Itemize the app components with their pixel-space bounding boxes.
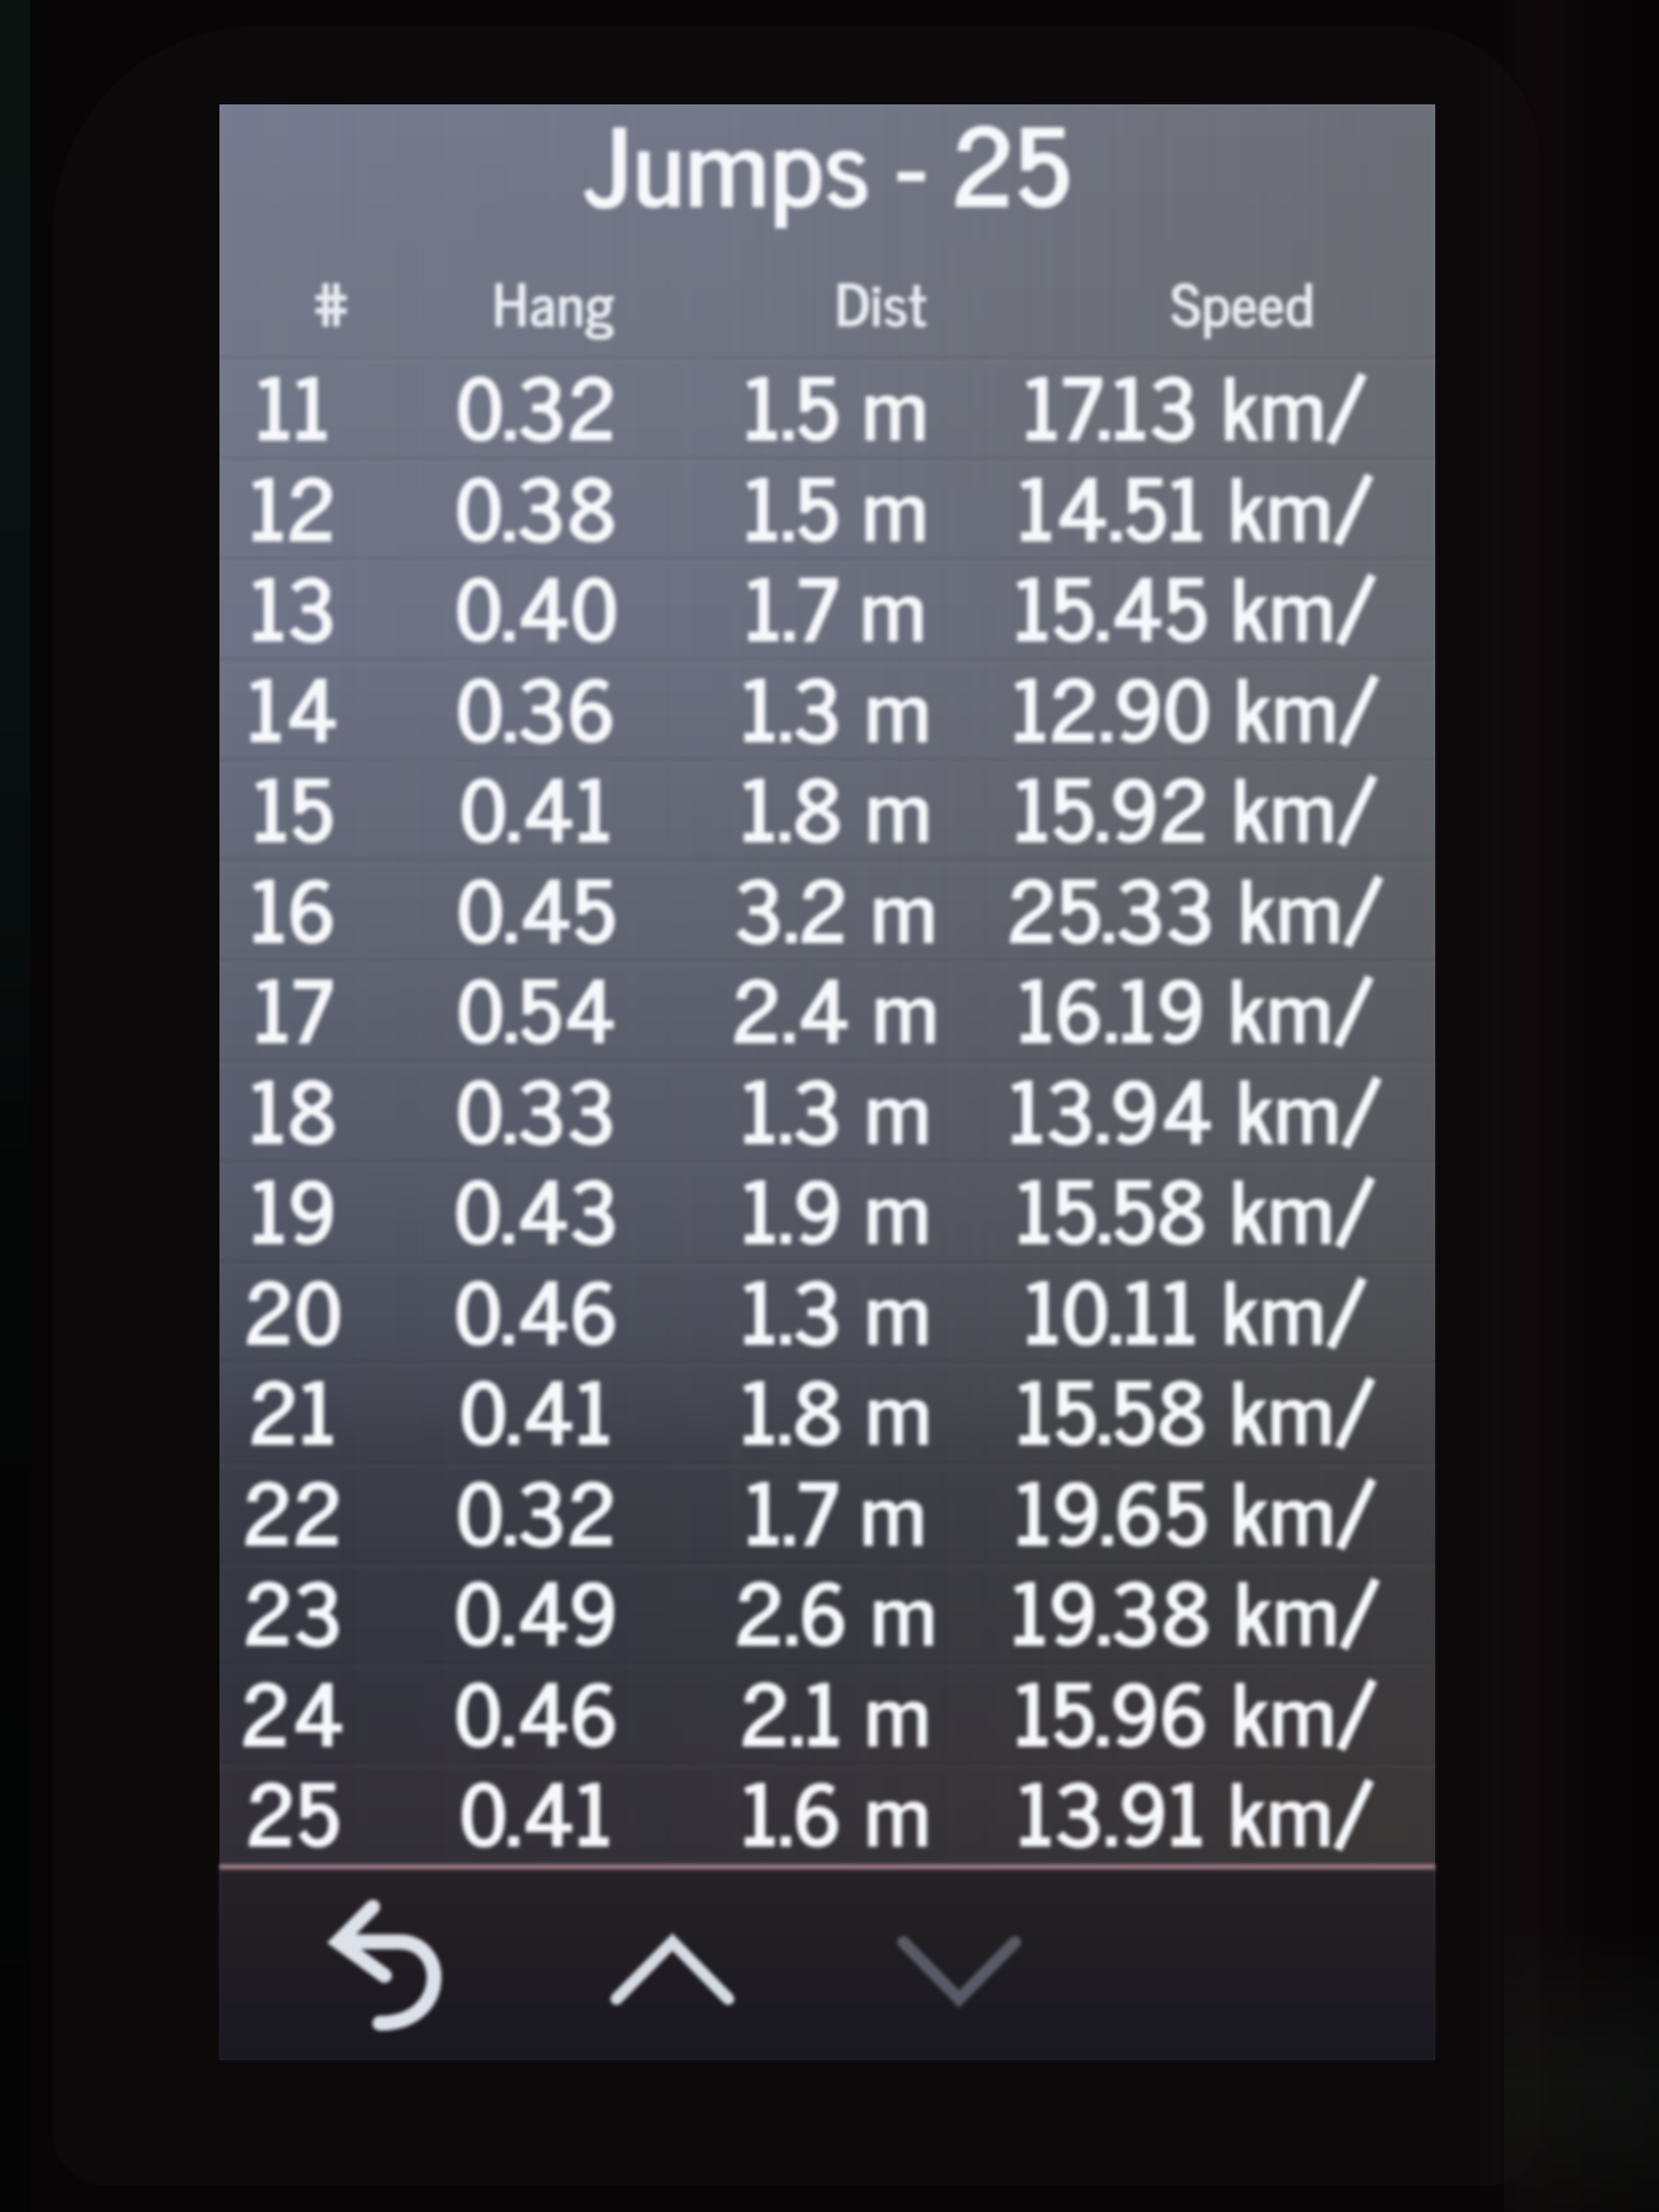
staticText: 12	[249, 434, 337, 575]
staticText: 0.43	[454, 1136, 619, 1278]
staticText: 15.58 km/	[1015, 1337, 1377, 1479]
button[interactable]	[219, 1764, 1435, 1865]
button[interactable]	[219, 861, 1435, 962]
staticText: 3.2 m	[734, 835, 937, 977]
staticText: 21	[249, 1337, 337, 1479]
staticText: 20	[244, 1237, 342, 1379]
staticText: 13.91 km/	[1017, 1739, 1375, 1880]
button[interactable]	[219, 660, 1435, 761]
staticText: 15.58 km/	[1015, 1136, 1377, 1278]
staticText: 12.90 km/	[1011, 634, 1380, 776]
staticText: 16	[250, 835, 337, 977]
button[interactable]	[219, 1263, 1435, 1363]
button[interactable]: Back	[330, 1901, 449, 2030]
staticText: 23	[243, 1538, 343, 1679]
staticText: 13.94 km/	[1008, 1036, 1383, 1178]
staticText: 25.33 km/	[1007, 835, 1385, 977]
staticText: 0.41	[459, 734, 613, 876]
staticText: 0.32	[456, 333, 618, 474]
staticText: 1.9 m	[741, 1136, 931, 1278]
staticText: 22	[242, 1438, 343, 1579]
staticText: 19.65 km/	[1014, 1438, 1378, 1579]
staticText: 18	[249, 1036, 338, 1178]
staticText: 0.36	[456, 634, 617, 776]
staticText: 1.3 m	[741, 634, 931, 776]
staticText: Speed	[1171, 252, 1314, 349]
staticText: 0.33	[456, 1036, 617, 1178]
button[interactable]	[219, 1062, 1435, 1163]
staticText: Dist	[834, 252, 926, 349]
button[interactable]	[219, 1162, 1435, 1263]
button[interactable]	[219, 459, 1435, 560]
staticText: 25	[246, 1739, 341, 1880]
staticText: 1.8 m	[740, 1337, 932, 1479]
staticText: 15	[252, 734, 334, 876]
staticText: 11	[255, 333, 331, 474]
button[interactable]: Scroll up	[611, 1936, 734, 2005]
staticText: 1.3 m	[741, 1237, 931, 1379]
staticText: 16.19 km/	[1017, 935, 1375, 1077]
staticText: 14	[247, 634, 339, 776]
staticText: 0.32	[456, 1438, 618, 1579]
staticText: 0.54	[457, 935, 617, 1077]
staticText: 17	[253, 935, 333, 1077]
button[interactable]	[219, 961, 1435, 1062]
button[interactable]: Scroll down	[897, 1936, 1021, 2005]
staticText: 0.46	[454, 1237, 619, 1379]
staticText: 2.6 m	[734, 1538, 937, 1679]
staticText: 1.8 m	[740, 734, 932, 876]
staticText: 0.45	[457, 835, 617, 977]
staticText: 13	[250, 534, 337, 675]
staticText: 0.41	[459, 1337, 613, 1479]
staticText: 1.7 m	[744, 534, 926, 675]
staticText: 19	[250, 1136, 337, 1278]
staticText: 15.92 km/	[1013, 734, 1379, 876]
staticText: 1.3 m	[741, 1036, 931, 1178]
staticText: #	[311, 252, 351, 349]
staticText: 10.11 km/	[1024, 1237, 1368, 1379]
staticText: Hang	[492, 252, 614, 349]
staticText: 2.4 m	[732, 935, 939, 1077]
staticText: 0.41	[459, 1739, 613, 1880]
button[interactable]	[219, 760, 1435, 861]
button[interactable]	[219, 559, 1435, 660]
staticText: 17.13 km/	[1023, 333, 1368, 474]
staticText: 15.45 km/	[1013, 534, 1378, 675]
staticText: 24	[241, 1639, 345, 1780]
staticText: 19.38 km/	[1010, 1538, 1381, 1679]
button[interactable]	[219, 1363, 1435, 1463]
button[interactable]	[219, 1664, 1435, 1765]
staticText: 2.1 m	[740, 1639, 931, 1780]
staticText: 15.96 km/	[1013, 1639, 1379, 1780]
button[interactable]	[219, 1463, 1435, 1564]
staticText: 0.49	[454, 1538, 618, 1679]
staticText: 0.38	[455, 434, 618, 575]
staticText: 0.40	[455, 534, 618, 675]
staticText: 14.51 km/	[1017, 434, 1375, 575]
staticText: 0.46	[454, 1639, 619, 1780]
staticText: 1.5 m	[743, 333, 928, 474]
button[interactable]	[219, 1563, 1435, 1664]
staticText: 1.5 m	[743, 434, 928, 575]
staticText: 1.7 m	[744, 1438, 926, 1579]
staticText: 1.6 m	[741, 1739, 931, 1880]
staticText: Jumps - 25	[584, 71, 1071, 249]
button[interactable]	[219, 358, 1435, 459]
